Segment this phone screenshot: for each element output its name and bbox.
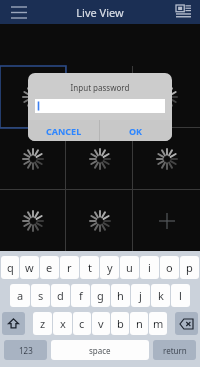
staticText: OK <box>129 125 143 137</box>
button[interactable]: k <box>151 284 170 307</box>
button[interactable]: o <box>160 256 179 279</box>
button[interactable]: t <box>80 256 99 279</box>
staticText: p <box>186 260 193 275</box>
staticText: l <box>179 288 182 303</box>
button[interactable]: w <box>20 256 39 279</box>
button[interactable]: z <box>33 312 52 335</box>
button[interactable]: Camera channel <box>0 66 66 128</box>
button[interactable]: m <box>149 312 167 335</box>
staticText: r <box>67 260 72 275</box>
staticText: d <box>57 288 64 303</box>
button[interactable]: h <box>111 284 130 307</box>
staticText: n <box>136 316 143 331</box>
staticText: z <box>40 316 46 331</box>
staticText: u <box>126 260 133 275</box>
staticText: g <box>97 288 104 303</box>
staticText: x <box>60 316 66 331</box>
staticText: c <box>79 316 85 331</box>
button[interactable]: Menu <box>8 2 30 22</box>
button[interactable]: x <box>53 312 72 335</box>
staticText: b <box>117 316 124 331</box>
staticText: j <box>139 288 142 303</box>
button[interactable]: g <box>91 284 110 307</box>
button[interactable]: Camera channel <box>66 128 133 190</box>
button[interactable]: p <box>180 256 199 279</box>
button[interactable]: a <box>10 284 30 307</box>
button[interactable]: Camera channel <box>0 190 66 252</box>
button[interactable]: f <box>71 284 90 307</box>
staticText: o <box>166 260 173 275</box>
staticText: t <box>88 260 92 275</box>
button[interactable]: 123 <box>4 340 47 360</box>
staticText: w <box>25 260 34 275</box>
button[interactable]: l <box>171 284 190 307</box>
button[interactable]: j <box>131 284 150 307</box>
button[interactable]: Camera channel <box>66 66 133 128</box>
button[interactable]: Shift <box>2 312 25 335</box>
staticText: v <box>98 316 104 331</box>
staticText: return <box>163 345 187 356</box>
button[interactable]: Add camera <box>133 190 200 252</box>
staticText: a <box>17 288 24 303</box>
button[interactable]: e <box>40 256 59 279</box>
button[interactable]: n <box>130 312 148 335</box>
button[interactable]: d <box>51 284 70 307</box>
staticText: m <box>153 316 164 331</box>
staticText: Live View <box>76 5 124 20</box>
button[interactable]: y <box>100 256 119 279</box>
staticText: f <box>79 288 83 303</box>
button[interactable]: Layout <box>173 2 193 22</box>
button[interactable]: q <box>1 256 19 279</box>
button[interactable] <box>35 99 165 113</box>
staticText: e <box>46 260 53 275</box>
button[interactable]: v <box>92 312 110 335</box>
button[interactable]: space <box>51 340 149 360</box>
button[interactable]: Camera channel <box>133 128 200 190</box>
button[interactable]: i <box>140 256 159 279</box>
button[interactable]: r <box>60 256 79 279</box>
staticText: k <box>158 288 164 303</box>
staticText: Input password <box>28 82 172 93</box>
staticText: CANCEL <box>46 125 82 137</box>
staticText: 123 <box>19 345 33 356</box>
button[interactable]: u <box>120 256 139 279</box>
button[interactable]: Camera channel <box>133 66 200 128</box>
button[interactable]: return <box>153 340 196 360</box>
button[interactable]: b <box>111 312 129 335</box>
button[interactable]: Camera channel <box>0 128 66 190</box>
button[interactable]: OK <box>100 120 172 141</box>
button[interactable]: Backspace <box>175 312 198 335</box>
staticText: h <box>117 288 124 303</box>
button[interactable]: c <box>73 312 91 335</box>
staticText: i <box>148 260 151 275</box>
button[interactable]: Camera channel <box>66 190 133 252</box>
staticText: s <box>38 288 44 303</box>
staticText: space <box>89 345 111 356</box>
staticText: y <box>107 260 113 275</box>
button[interactable]: s <box>31 284 50 307</box>
staticText: q <box>7 260 14 275</box>
button[interactable]: CANCEL <box>28 120 99 141</box>
